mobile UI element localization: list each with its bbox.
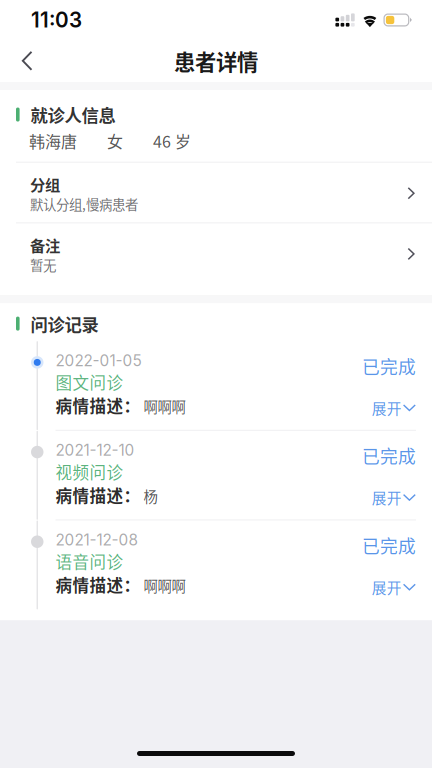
button[interactable]: 展开 bbox=[372, 489, 416, 505]
staticText: 11:03 bbox=[31, 9, 82, 31]
button[interactable]: 分组 bbox=[0, 163, 432, 222]
staticText: 已完成 bbox=[362, 535, 416, 555]
staticText: 2022-01-05 bbox=[55, 353, 141, 368]
staticText: 已完成 bbox=[362, 446, 416, 465]
staticText: 分组 bbox=[30, 176, 60, 193]
staticText: 语音问诊 bbox=[55, 552, 123, 570]
staticText: 杨 bbox=[143, 488, 157, 504]
staticText: 就诊人信息 bbox=[31, 105, 116, 124]
staticText: 暂无 bbox=[30, 257, 56, 272]
staticText: 女 bbox=[107, 132, 123, 150]
staticText: 2021-12-10 bbox=[55, 443, 134, 458]
staticText: 病情描述： bbox=[55, 486, 140, 504]
staticText: 展开 bbox=[372, 400, 402, 416]
staticText: 已完成 bbox=[362, 356, 416, 376]
button[interactable]: 备注 bbox=[0, 223, 432, 283]
button[interactable]: 展开 bbox=[372, 579, 416, 595]
staticText: 备注 bbox=[30, 236, 60, 253]
staticText: 患者详情 bbox=[174, 49, 258, 73]
button[interactable]: 展开 bbox=[372, 400, 416, 416]
staticText: 病情描述： bbox=[55, 396, 140, 414]
button[interactable]: 返回 bbox=[0, 40, 49, 82]
staticText: 图文问诊 bbox=[55, 373, 123, 391]
staticText: 视频问诊 bbox=[55, 463, 123, 481]
staticText: 2021-12-08 bbox=[55, 532, 137, 547]
staticText: 韩海唐 bbox=[29, 132, 77, 150]
staticText: 啊啊啊 bbox=[143, 578, 185, 593]
staticText: 展开 bbox=[372, 579, 402, 595]
staticText: 啊啊啊 bbox=[143, 398, 185, 414]
staticText: 46 岁 bbox=[153, 132, 191, 150]
staticText: 问诊记录 bbox=[31, 314, 99, 333]
staticText: 展开 bbox=[372, 489, 402, 505]
staticText: 病情描述： bbox=[55, 575, 140, 594]
staticText: 默认分组,慢病患者 bbox=[30, 197, 138, 211]
